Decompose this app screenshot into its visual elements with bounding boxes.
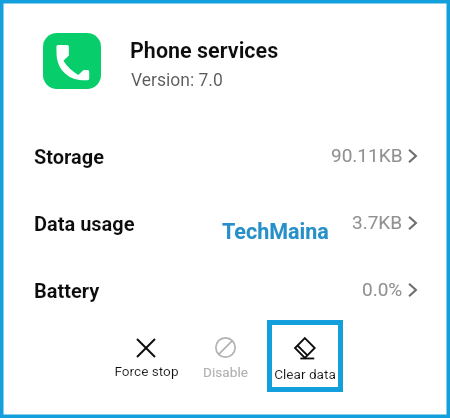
staticText: Data usage xyxy=(34,212,135,235)
button[interactable]: Disable xyxy=(189,325,261,390)
other: Disable xyxy=(215,337,236,358)
staticText: 90.11KB xyxy=(331,144,403,166)
staticText: Force stop xyxy=(114,363,179,379)
button[interactable]: Data usage xyxy=(0,201,450,245)
staticText: 3.7KB xyxy=(352,211,403,233)
button[interactable]: Force stop xyxy=(110,327,182,389)
staticText: Phone services xyxy=(130,38,279,63)
staticText: Storage xyxy=(34,145,105,168)
staticText: Battery xyxy=(34,279,100,302)
staticText: 0.0% xyxy=(362,278,403,300)
staticText: Clear data xyxy=(274,366,336,382)
other: Force stop xyxy=(137,339,155,357)
button[interactable]: Storage xyxy=(0,134,450,178)
staticText: Disable xyxy=(203,364,248,380)
staticText: TechMaina xyxy=(222,219,329,244)
button[interactable]: Clear data xyxy=(269,326,341,392)
button[interactable]: Battery xyxy=(0,268,450,312)
staticText: Version: 7.0 xyxy=(131,70,223,91)
other: Clear data xyxy=(295,338,316,360)
